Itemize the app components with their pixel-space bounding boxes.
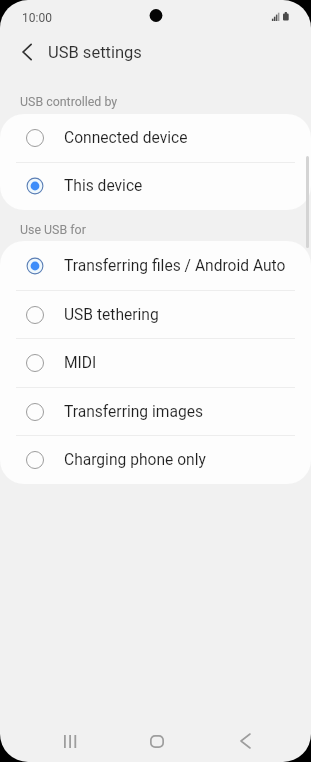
button[interactable]: Back — [217, 727, 273, 755]
button[interactable]: Charging phone only — [0, 435, 311, 484]
staticText: Transferring files / Android Auto — [64, 257, 286, 275]
staticText: Transferring images — [64, 403, 203, 421]
button[interactable]: Transferring files / Android Auto — [0, 241, 311, 290]
button[interactable]: Connected device — [0, 114, 311, 162]
button[interactable]: This device — [0, 162, 311, 210]
staticText: USB controlled by — [20, 94, 118, 109]
staticText: USB settings — [48, 43, 142, 62]
button[interactable]: USB tethering — [0, 290, 311, 339]
staticText: This device — [64, 177, 143, 195]
staticText: Charging phone only — [64, 451, 206, 469]
button[interactable]: Recent apps — [42, 727, 98, 755]
button[interactable]: MIDI — [0, 338, 311, 387]
staticText: 10:00 — [22, 11, 52, 25]
staticText: USB tethering — [64, 306, 159, 324]
staticText: Use USB for — [20, 222, 86, 237]
button[interactable]: Home — [129, 727, 185, 755]
staticText: Connected device — [64, 129, 188, 147]
button[interactable]: Navigate up — [9, 34, 45, 70]
button[interactable]: Transferring images — [0, 387, 311, 436]
staticText: MIDI — [64, 354, 97, 372]
